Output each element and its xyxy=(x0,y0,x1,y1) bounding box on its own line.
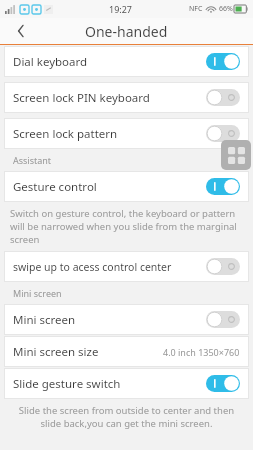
button[interactable]: Toggle on xyxy=(206,178,240,195)
staticText: Slide gesture switch xyxy=(13,376,206,392)
staticText: Screen lock PIN keyboard xyxy=(13,90,206,106)
button[interactable]: Toggle off xyxy=(206,89,240,106)
staticText: Slide the screen from outside to center … xyxy=(10,404,243,430)
button[interactable]: Slide gesture switch xyxy=(4,368,249,399)
button[interactable]: Quick apps xyxy=(221,140,251,170)
staticText: swipe up to acess control center xyxy=(13,260,206,274)
staticText: Screen lock pattern xyxy=(13,126,206,142)
staticText: 4.0 inch 1350×760 xyxy=(163,346,240,358)
button[interactable]: Screen lock pattern xyxy=(4,118,249,149)
button[interactable]: Toggle off xyxy=(206,258,240,275)
staticText: Gesture control xyxy=(13,179,206,195)
staticText: 66% xyxy=(219,4,233,14)
button[interactable]: swipe up to acess control center xyxy=(4,251,249,282)
button[interactable]: Mini screen xyxy=(4,304,249,335)
staticText: Mini screen xyxy=(13,312,206,328)
button[interactable]: Screen lock PIN keyboard xyxy=(4,82,249,113)
staticText: 19:27 xyxy=(109,3,133,15)
button[interactable]: Toggle off xyxy=(206,311,240,328)
staticText: Assistant xyxy=(13,154,52,166)
button[interactable]: Toggle on xyxy=(206,53,240,70)
button[interactable]: Toggle off xyxy=(206,125,240,142)
button[interactable]: Back xyxy=(0,18,42,44)
staticText: Mini screen xyxy=(13,287,62,299)
staticText: Mini screen size xyxy=(13,344,163,360)
button[interactable]: Toggle on xyxy=(206,375,240,392)
button[interactable]: Dial keyboard xyxy=(4,46,249,77)
staticText: One-handed xyxy=(85,22,168,41)
button[interactable]: Gesture control xyxy=(4,171,249,202)
button[interactable]: Mini screen size xyxy=(4,336,249,367)
staticText: Switch on gesture control, the keyboard … xyxy=(10,207,243,246)
staticText: NFC xyxy=(189,4,203,14)
staticText: Dial keyboard xyxy=(13,54,206,70)
